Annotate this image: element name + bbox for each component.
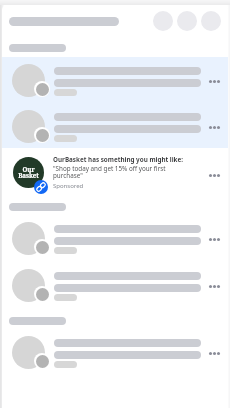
button[interactable]: More options [2,336,228,369]
button[interactable]: More options [204,167,224,183]
button[interactable]: More options [2,222,228,255]
staticText: OurBasket has something you might like: [53,155,184,164]
button[interactable]: More options [204,345,224,361]
button[interactable]: More options [2,269,228,302]
button[interactable]: More options [2,110,228,143]
staticText: "Shop today and get 15% off your first p… [53,164,166,180]
button[interactable]: Our Basket [2,157,228,199]
button[interactable]: Header action 3 [201,11,221,31]
button[interactable]: More options [204,278,224,294]
button[interactable]: More options [2,64,228,97]
button[interactable]: Header action 1 [153,11,173,31]
button[interactable]: More options [204,231,224,247]
staticText: Our Basket [18,165,39,180]
staticText: Sponsored [53,182,84,190]
button[interactable]: Header action 2 [177,11,197,31]
button[interactable]: More options [204,119,224,135]
button[interactable]: More options [204,73,224,89]
